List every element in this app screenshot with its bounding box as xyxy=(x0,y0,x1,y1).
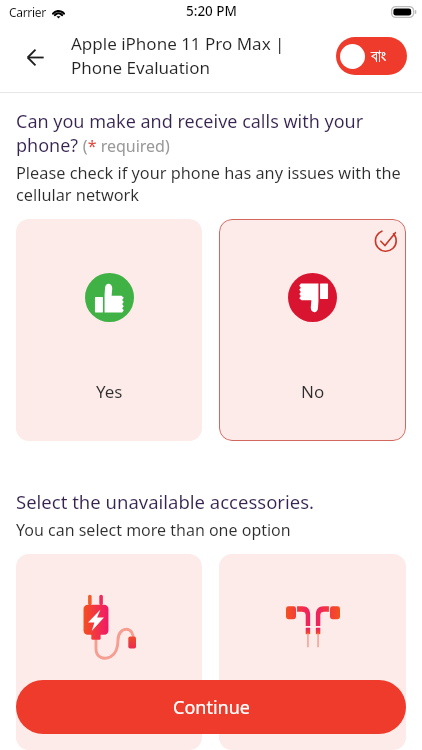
staticText: Select the unavailable accessories. xyxy=(16,489,315,514)
staticText: Can you make and receive calls with your… xyxy=(16,109,406,157)
staticText: Continue xyxy=(173,695,250,720)
button[interactable]: Charger xyxy=(16,554,202,750)
staticText: 5:20 PM xyxy=(186,2,237,20)
staticText: বাং xyxy=(371,48,387,65)
staticText: No xyxy=(301,380,325,403)
button[interactable]: No xyxy=(219,219,406,441)
button[interactable]: Language toggle xyxy=(336,37,407,75)
staticText: Carrier xyxy=(9,4,46,20)
button[interactable]: Continue xyxy=(16,680,406,734)
staticText: Apple iPhone 11 Pro Max | Phone Evaluati… xyxy=(71,32,285,79)
button[interactable]: Yes xyxy=(16,219,202,441)
button[interactable]: Earphones xyxy=(219,554,406,750)
staticText: You can select more than one option xyxy=(16,519,291,541)
staticText: Yes xyxy=(96,380,123,403)
staticText: Please check if your phone has any issue… xyxy=(16,162,406,206)
button[interactable]: Back xyxy=(16,38,54,76)
